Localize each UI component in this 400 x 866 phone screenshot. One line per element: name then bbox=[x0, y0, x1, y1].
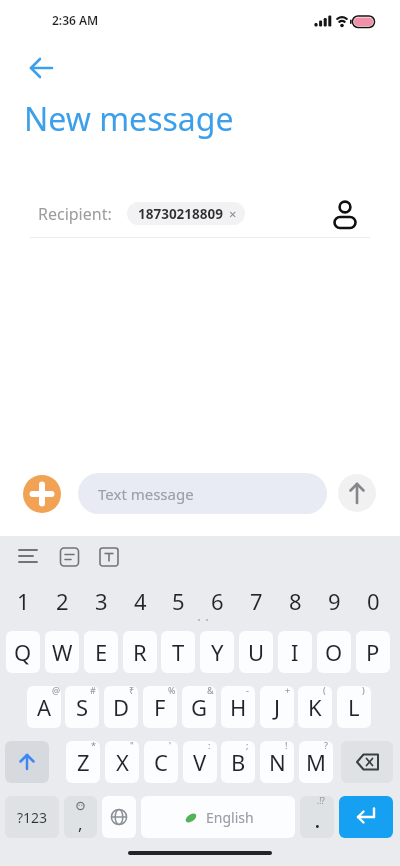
staticText: New message bbox=[24, 97, 234, 141]
staticText: J bbox=[274, 692, 281, 722]
button[interactable]: 5 bbox=[159, 585, 197, 617]
staticText: X bbox=[116, 747, 129, 777]
button[interactable]: M bbox=[299, 741, 333, 783]
button[interactable]: O bbox=[317, 631, 351, 673]
staticText: ? bbox=[324, 739, 328, 751]
staticText: 3 bbox=[95, 586, 108, 616]
button[interactable] bbox=[338, 474, 376, 512]
staticText: S bbox=[76, 692, 89, 722]
button[interactable]: Y bbox=[200, 631, 234, 673]
button[interactable]: W bbox=[45, 631, 79, 673]
button[interactable]: 4 bbox=[121, 585, 159, 617]
staticText: ' bbox=[169, 739, 172, 751]
button[interactable]: ?123 bbox=[5, 796, 59, 838]
button[interactable] bbox=[5, 741, 49, 783]
button[interactable]: Text message bbox=[78, 473, 327, 514]
button[interactable]: A bbox=[27, 686, 61, 728]
button[interactable]: R bbox=[123, 631, 157, 673]
staticText: T bbox=[172, 637, 185, 667]
staticText: * bbox=[91, 739, 96, 751]
button[interactable]: P bbox=[356, 631, 390, 673]
button[interactable]: 2 bbox=[43, 585, 81, 617]
staticText: 0 bbox=[367, 586, 380, 616]
button[interactable] bbox=[339, 796, 393, 838]
staticText: 2:36 AM bbox=[52, 12, 99, 28]
button[interactable]: 8 bbox=[276, 585, 314, 617]
staticText: Recipient: bbox=[38, 203, 112, 225]
button[interactable]: K bbox=[298, 686, 332, 728]
staticText: ₹ bbox=[129, 684, 135, 696]
staticText: 6 bbox=[211, 586, 224, 616]
button[interactable]: D bbox=[104, 686, 138, 728]
staticText: G bbox=[191, 692, 208, 722]
staticText: H bbox=[230, 692, 247, 722]
staticText: I bbox=[291, 637, 299, 667]
button[interactable]: S bbox=[65, 686, 99, 728]
staticText: V bbox=[193, 747, 207, 777]
staticText: ( bbox=[323, 684, 326, 696]
button[interactable] bbox=[341, 741, 393, 783]
staticText: M bbox=[306, 747, 326, 777]
staticText: Text message bbox=[98, 484, 194, 504]
button[interactable]: T bbox=[161, 631, 195, 673]
staticText: % bbox=[168, 684, 176, 696]
staticText: 18730218809 bbox=[138, 205, 223, 223]
button[interactable] bbox=[102, 796, 136, 838]
button[interactable]: G bbox=[182, 686, 216, 728]
staticText: & bbox=[207, 684, 214, 696]
staticText: O bbox=[325, 637, 343, 667]
staticText: . bbox=[315, 810, 320, 833]
button[interactable]: English bbox=[141, 796, 295, 838]
button[interactable]: I bbox=[278, 631, 312, 673]
staticText: D bbox=[113, 692, 130, 722]
button[interactable]: . bbox=[300, 796, 334, 838]
button[interactable]: Z bbox=[66, 741, 100, 783]
staticText: F bbox=[154, 692, 166, 722]
button[interactable]: J bbox=[260, 686, 294, 728]
staticText: E bbox=[95, 637, 108, 667]
button[interactable]: V bbox=[183, 741, 217, 783]
button[interactable]: L bbox=[337, 686, 371, 728]
button[interactable]: 1 bbox=[4, 585, 42, 617]
staticText: - bbox=[246, 684, 249, 696]
staticText: K bbox=[308, 692, 322, 722]
staticText: B bbox=[231, 747, 246, 777]
staticText: 9 bbox=[328, 586, 341, 616]
staticText: 4 bbox=[134, 586, 147, 616]
staticText: 8 bbox=[289, 586, 302, 616]
button[interactable]: H bbox=[221, 686, 255, 728]
button[interactable]: 9 bbox=[315, 585, 353, 617]
button[interactable] bbox=[23, 475, 61, 513]
button[interactable]: X bbox=[105, 741, 139, 783]
button[interactable]: F bbox=[143, 686, 177, 728]
staticText: Q bbox=[14, 637, 32, 667]
staticText: " bbox=[130, 739, 134, 751]
button[interactable]: U bbox=[239, 631, 273, 673]
staticText: 2 bbox=[56, 586, 69, 616]
staticText: U bbox=[248, 637, 265, 667]
staticText: .!? bbox=[317, 795, 325, 806]
button[interactable]: 18730218809 bbox=[127, 202, 245, 225]
staticText: @ bbox=[52, 684, 61, 696]
button[interactable]: 6 bbox=[198, 585, 236, 617]
button[interactable]: 3 bbox=[82, 585, 120, 617]
button[interactable]: Q bbox=[6, 631, 40, 673]
staticText: ! bbox=[285, 739, 288, 751]
button[interactable]: , bbox=[64, 796, 97, 838]
button[interactable]: C bbox=[144, 741, 178, 783]
staticText: 5 bbox=[172, 586, 185, 616]
button[interactable]: E bbox=[84, 631, 118, 673]
staticText: W bbox=[52, 637, 73, 667]
staticText: ; bbox=[246, 739, 249, 751]
staticText: × bbox=[229, 205, 237, 223]
button[interactable]: 7 bbox=[237, 585, 275, 617]
button[interactable] bbox=[22, 56, 58, 92]
staticText: , bbox=[78, 812, 83, 835]
staticText: Y bbox=[211, 637, 224, 667]
staticText: ?123 bbox=[17, 808, 48, 827]
button[interactable]: B bbox=[221, 741, 255, 783]
staticText: N bbox=[269, 747, 286, 777]
button[interactable]: 0 bbox=[354, 585, 392, 617]
button[interactable]: N bbox=[260, 741, 294, 783]
button[interactable] bbox=[330, 194, 362, 232]
